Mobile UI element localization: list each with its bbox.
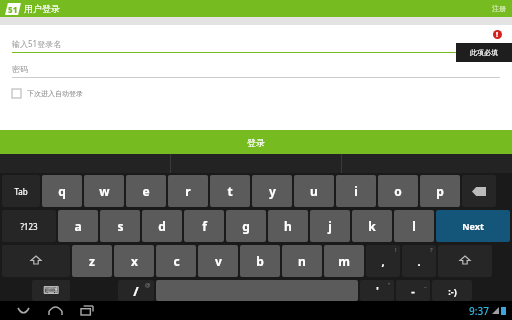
staticText: j — [328, 218, 332, 234]
button[interactable]: Home — [42, 301, 68, 320]
staticText: " — [388, 281, 391, 289]
staticText: 9:37 — [469, 304, 489, 318]
button[interactable]: 密码 — [12, 60, 500, 78]
staticText: _ — [424, 281, 427, 289]
button[interactable]: e — [126, 175, 166, 207]
button[interactable]: 输入51登录名 — [12, 35, 500, 53]
button[interactable]: h — [268, 210, 308, 242]
button[interactable]: Shift — [438, 245, 492, 277]
staticText: ' — [376, 283, 379, 298]
button[interactable]: Shift — [2, 245, 70, 277]
staticText: 输入51登录名 — [12, 38, 62, 49]
staticText: ? — [430, 246, 433, 254]
button[interactable]: k — [352, 210, 392, 242]
button[interactable]: Recent apps — [74, 301, 100, 320]
staticText: l — [412, 218, 416, 234]
staticText: x — [131, 253, 138, 269]
button[interactable]: j — [310, 210, 350, 242]
button[interactable]: b — [240, 245, 280, 277]
button[interactable]: 登录 — [0, 130, 512, 154]
button[interactable]: Back — [10, 301, 36, 320]
staticText: m — [338, 253, 350, 269]
staticText: :-) — [448, 285, 457, 297]
staticText: q — [58, 183, 66, 199]
staticText: ?123 — [20, 221, 38, 232]
staticText: u — [310, 183, 318, 199]
staticText: 登录 — [247, 137, 265, 148]
button[interactable]: c — [156, 245, 196, 277]
button[interactable]: w — [84, 175, 124, 207]
button[interactable]: n — [282, 245, 322, 277]
staticText: w — [99, 183, 110, 199]
staticText: ! — [496, 30, 499, 39]
button[interactable]: 注册 — [486, 4, 512, 13]
button[interactable]: u — [294, 175, 334, 207]
button[interactable]: t — [210, 175, 250, 207]
button[interactable]: x — [114, 245, 154, 277]
staticText: b — [256, 253, 264, 269]
button[interactable]: y — [252, 175, 292, 207]
button[interactable]: i — [336, 175, 376, 207]
staticText: t — [227, 183, 233, 199]
staticText: f — [202, 218, 207, 234]
button[interactable]: l — [394, 210, 434, 242]
staticText: g — [242, 218, 250, 234]
button[interactable]: Next — [436, 210, 510, 242]
staticText: a — [74, 218, 82, 234]
button[interactable]: p — [420, 175, 460, 207]
staticText: 此项必填 — [470, 48, 498, 57]
staticText: 注册 — [492, 4, 506, 13]
button[interactable]: , — [366, 245, 400, 277]
button[interactable]: :-) — [432, 280, 472, 301]
button[interactable]: r — [168, 175, 208, 207]
button[interactable]: Tab — [2, 175, 40, 207]
staticText: i — [354, 183, 358, 199]
button[interactable]: v — [198, 245, 238, 277]
button[interactable]: m — [324, 245, 364, 277]
staticText: p — [436, 183, 444, 199]
button[interactable]: - — [396, 280, 430, 301]
button[interactable]: f — [184, 210, 224, 242]
button[interactable]: a — [58, 210, 98, 242]
button[interactable]: ⌨ — [32, 280, 70, 301]
staticText: o — [394, 183, 402, 199]
button[interactable]: ?123 — [2, 210, 56, 242]
button[interactable]: . — [402, 245, 436, 277]
button[interactable]: 51 — [5, 3, 21, 15]
staticText: e — [142, 183, 150, 199]
button[interactable]: z — [72, 245, 112, 277]
staticText: , — [381, 254, 385, 269]
staticText: Next — [462, 220, 484, 232]
staticText: d — [158, 218, 166, 234]
staticText: c — [173, 253, 180, 269]
staticText: @ — [145, 281, 151, 289]
button[interactable]: s — [100, 210, 140, 242]
staticText: h — [284, 218, 292, 234]
staticText: z — [89, 253, 95, 269]
button[interactable]: q — [42, 175, 82, 207]
button[interactable]: ' — [360, 280, 394, 301]
staticText: 密码 — [12, 64, 28, 74]
staticText: / — [133, 282, 139, 300]
button[interactable]: 下次进入自动登录 — [12, 87, 83, 100]
staticText: ! — [395, 246, 397, 254]
staticText: r — [185, 183, 191, 199]
staticText: v — [215, 253, 222, 269]
staticText: - — [411, 283, 415, 298]
other: Shift — [31, 256, 41, 266]
button[interactable]: g — [226, 210, 266, 242]
staticText: k — [368, 218, 376, 234]
other: Backspace — [472, 187, 486, 196]
staticText: y — [269, 183, 276, 199]
staticText: s — [117, 218, 124, 234]
staticText: . — [417, 254, 421, 269]
button[interactable]: o — [378, 175, 418, 207]
staticText: 51 — [8, 4, 18, 15]
button[interactable]: Backspace — [462, 175, 496, 207]
button[interactable]: d — [142, 210, 182, 242]
button[interactable]: / — [118, 280, 154, 301]
